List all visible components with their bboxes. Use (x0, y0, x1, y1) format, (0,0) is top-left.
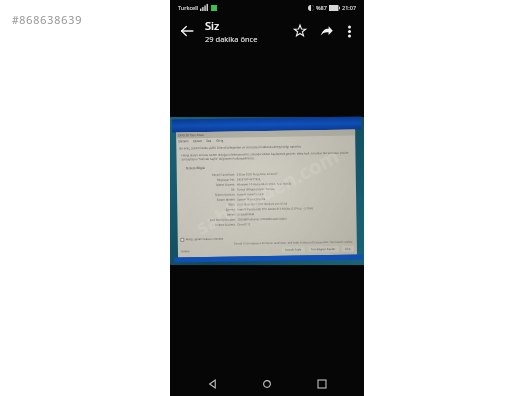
staticText: Turkcell (178, 4, 198, 11)
staticText: DESKTOP-4K77KNL (237, 177, 262, 181)
staticText: DirectX Sürümü: (177, 222, 236, 227)
button[interactable]: Geri (201, 372, 225, 396)
staticText: %87 (316, 4, 327, 11)
staticText: 29 dakika önce (205, 34, 258, 44)
staticText: Sonraki Sayfa (285, 247, 302, 252)
staticText: Sistem Üreticisi: (177, 192, 235, 197)
staticText: DirectX Tanı Aracı (178, 133, 204, 137)
staticText: Türkçe (Bölgesel Ayar: Türkçe) (237, 187, 275, 191)
staticText: #868638639 (12, 12, 82, 27)
staticText: 2024MB kullanılır, 2453MB kullanılabilir (237, 217, 287, 221)
staticText: sahibinden.com (191, 142, 344, 241)
staticText: Bu araç, sisteminizde yüklü DirectX bile… (179, 144, 301, 150)
button[interactable]: Paylaş (315, 20, 337, 42)
staticText: Ekran (193, 139, 202, 143)
staticText: Sistem Modeli: (177, 197, 235, 202)
staticText: İşletim Sistemi: (177, 182, 235, 187)
staticText: Siz (205, 18, 220, 33)
staticText: Disk belleği Dosyası: (177, 217, 235, 222)
staticText: System manufacturer (237, 192, 265, 196)
staticText: BIOS: (177, 202, 235, 207)
staticText: Ses (206, 139, 212, 143)
button[interactable]: Diğer seçenekler (339, 21, 359, 41)
staticText: BIOS Date: 09/11/19 18:23:25 Ver: 07.05 (237, 202, 288, 206)
staticText: Intel(R) Pentium(R) CPU G4620 @ 3.90GHz … (237, 206, 313, 211)
staticText: 21:07 (342, 4, 357, 11)
staticText: Çıkış (345, 247, 351, 251)
staticText: Hangi alanın sorunu neden olduğunu bilmi… (181, 151, 350, 161)
staticText: Giriş (216, 139, 223, 143)
staticText: İşlemci: (177, 207, 235, 212)
staticText: Dil: (177, 187, 235, 192)
staticText: 6 Ekim 2020 Perşembe, 20:20:37 (237, 172, 278, 176)
button[interactable]: Tüm Bilgileri Kaydet (308, 246, 339, 252)
button[interactable]: Yıldız ekle (289, 20, 311, 42)
button[interactable]: Çıkış (342, 246, 354, 252)
button[interactable]: DirectX Tanı Aracı (170, 117, 364, 265)
staticText: 8192MB RAM (237, 212, 254, 216)
button[interactable]: Son uygulamalar (310, 372, 334, 396)
staticText: Tüm Bilgileri Kaydet (311, 247, 336, 251)
button[interactable]: Geri (175, 19, 199, 43)
staticText: Bellek: (177, 212, 235, 217)
staticText: System Product Name (237, 197, 265, 201)
staticText: Windows 10 Home 64-bit (10.0, Yapı 18363… (237, 182, 292, 186)
staticText: Sistem (178, 139, 189, 143)
staticText: Sistem Bilgisi (186, 166, 206, 170)
staticText: DirectX 12 (237, 222, 251, 226)
button[interactable]: Sonraki Sayfa (282, 246, 305, 253)
staticText: DirectX 12 için destek 4 bit Sürüm taraf… (178, 240, 353, 245)
staticText: Bilgisayar Adı: (177, 177, 235, 182)
staticText: WHQL dijital imzalarını denetle (186, 237, 224, 241)
staticText: Geçerli Tarih/Saat: (177, 172, 235, 177)
staticText: Yardım (181, 249, 190, 253)
button[interactable]: Ana ekran (255, 372, 279, 396)
